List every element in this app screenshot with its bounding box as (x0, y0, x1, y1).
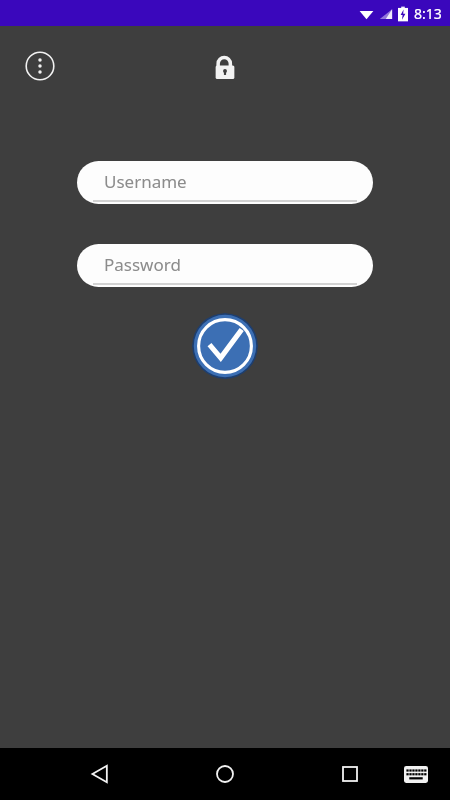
button[interactable]: Back (78, 752, 122, 796)
staticText: Password (104, 253, 181, 276)
button[interactable]: Recent apps (328, 752, 372, 796)
button[interactable]: Username (77, 161, 373, 204)
button[interactable]: Change keyboard (396, 754, 436, 794)
button[interactable]: Unlock (205, 46, 245, 86)
button[interactable]: More options (22, 48, 58, 84)
button[interactable]: Home (203, 752, 247, 796)
button[interactable]: Password (77, 244, 373, 287)
staticText: Username (104, 170, 187, 193)
staticText: 8:13 (414, 4, 442, 23)
button[interactable]: Submit (192, 313, 258, 379)
